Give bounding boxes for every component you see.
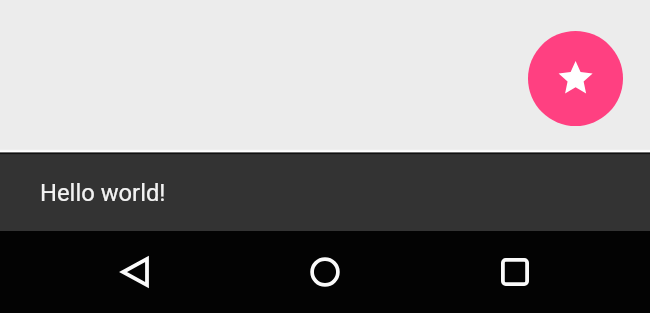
staticText: Hello world!: [40, 179, 166, 207]
button[interactable]: Back: [111, 248, 159, 296]
button[interactable]: Recent apps: [491, 248, 539, 296]
button[interactable]: Home: [301, 248, 349, 296]
button[interactable]: Favorite: [528, 31, 623, 126]
